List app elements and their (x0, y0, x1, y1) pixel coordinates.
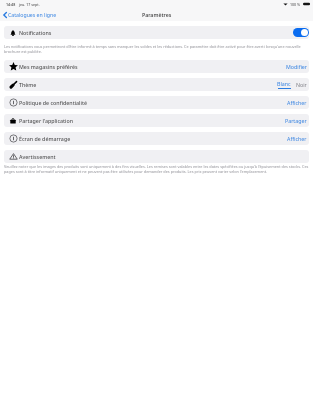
button[interactable]: Partager l'application (4, 114, 309, 127)
button[interactable]: Afficher (285, 135, 309, 142)
button[interactable]: Avertissement (4, 150, 309, 163)
staticText: Les notifications vous permettront d'êtr… (4, 44, 309, 54)
staticText: Thème (19, 81, 37, 88)
staticText: Notifications (19, 29, 52, 36)
staticText: Politique de confidentialité (19, 99, 88, 106)
staticText: jeu. 17 sept. (19, 2, 40, 7)
button[interactable]: Blanc (276, 80, 292, 89)
staticText: 100 % (290, 2, 301, 7)
staticText: Écran de démarrage (19, 135, 71, 142)
staticText: Afficher (287, 99, 307, 106)
staticText: Afficher (287, 135, 307, 142)
button[interactable]: Noir (294, 81, 309, 88)
button[interactable]: Notifications (4, 26, 309, 39)
button[interactable]: Partager (283, 117, 309, 124)
button[interactable]: Catalogues en ligne (3, 11, 57, 18)
staticText: Noir (296, 81, 307, 88)
staticText: Veuillez noter que les images des produi… (4, 164, 309, 174)
staticText: Partager l'application (19, 117, 74, 124)
staticText: Catalogues en ligne (8, 11, 57, 18)
button[interactable]: Afficher (285, 99, 309, 106)
button[interactable]: Politique de confidentialité (4, 96, 309, 109)
button[interactable]: Activer les notifications (293, 28, 309, 37)
staticText: Blanc (277, 80, 291, 87)
button[interactable]: Mes magasins préférés (4, 60, 309, 73)
button[interactable]: Modifier (284, 63, 309, 70)
staticText: Avertissement (19, 153, 56, 160)
staticText: Partager (285, 117, 307, 124)
staticText: 14:48 (6, 2, 16, 7)
staticText: Modifier (286, 63, 307, 70)
button[interactable]: Écran de démarrage (4, 132, 309, 145)
button[interactable]: Thème (4, 78, 309, 91)
staticText: Paramètres (142, 11, 172, 18)
staticText: Mes magasins préférés (19, 63, 78, 70)
